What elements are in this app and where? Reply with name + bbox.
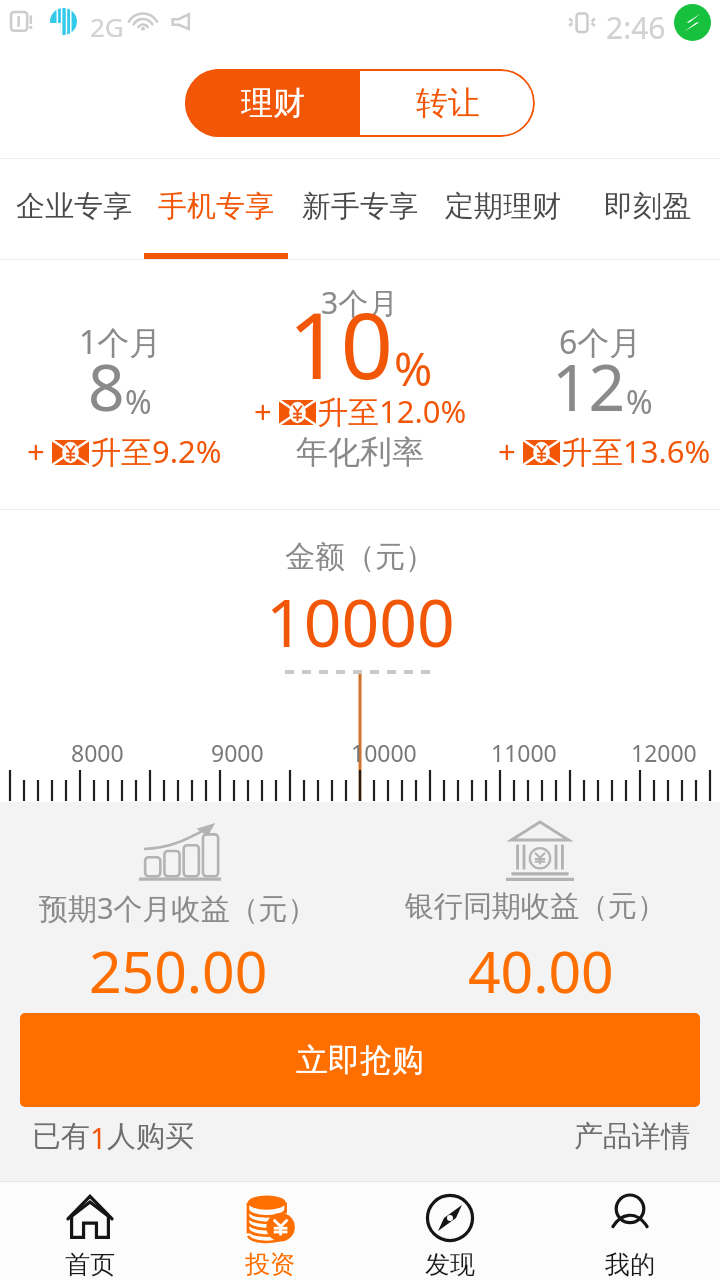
staticText: 11000 [491, 737, 557, 768]
staticText: 9000 [211, 737, 264, 768]
staticText: 6个月 [559, 320, 642, 364]
staticText: + [498, 430, 516, 472]
button[interactable]: Home [0, 1181, 180, 1280]
button[interactable]: Discover [360, 1181, 540, 1280]
button[interactable]: 企业专享 [2, 159, 146, 259]
staticText: 年化利率 [296, 432, 424, 472]
staticText: 升至12.0% [317, 390, 467, 432]
staticText: 立即抢购 [296, 1040, 424, 1080]
button[interactable]: 产品详情 [450, 1118, 690, 1155]
staticText: 预期3个月收益（元） [39, 888, 317, 928]
staticText: 8000 [71, 737, 124, 768]
staticText: 新手专享 [302, 188, 418, 225]
staticText: 10000 [351, 737, 417, 768]
staticText: 企业专享 [16, 188, 132, 225]
staticText: 人购买 [107, 1118, 194, 1155]
staticText: 2:46 [606, 7, 666, 48]
staticText: 发现 [425, 1249, 475, 1280]
staticText: 银行同期收益（元） [405, 888, 666, 925]
staticText: + [254, 390, 272, 432]
button[interactable]: 定期理财 [431, 159, 575, 259]
button[interactable]: 转让 [360, 69, 535, 137]
button[interactable]: 即刻盈 [591, 159, 703, 259]
button[interactable]: 立即抢购 [20, 1013, 700, 1107]
staticText: 转让 [416, 83, 480, 123]
button[interactable]: Profile [540, 1181, 720, 1280]
staticText: 首页 [65, 1249, 115, 1280]
staticText: 金额（元） [285, 538, 435, 576]
button[interactable]: 已有 [32, 1118, 194, 1157]
staticText: 2G [90, 9, 124, 44]
staticText: 1 [90, 1118, 107, 1157]
staticText: 12 [552, 343, 626, 430]
staticText: 升至9.2% [90, 430, 222, 472]
staticText: 250.00 [89, 932, 268, 1010]
staticText: % [394, 337, 433, 400]
staticText: 8 [88, 343, 125, 430]
staticText: 12000 [631, 737, 697, 768]
button[interactable]: 新手专享 [288, 159, 432, 259]
staticText: 升至13.6% [561, 430, 711, 472]
button[interactable]: Invest [180, 1181, 360, 1280]
staticText: 投资 [245, 1249, 295, 1280]
staticText: 40.00 [468, 932, 614, 1010]
staticText: 我的 [605, 1249, 655, 1280]
staticText: 3个月 [321, 282, 399, 323]
staticText: 已有 [32, 1118, 90, 1155]
staticText: 手机专享 [158, 188, 274, 225]
staticText: + [27, 430, 45, 472]
button[interactable]: 手机专享 [144, 159, 288, 259]
staticText: 1个月 [79, 320, 162, 364]
staticText: 即刻盈 [604, 188, 691, 225]
button[interactable]: 理财 [185, 69, 360, 137]
staticText: % [626, 380, 653, 424]
staticText: 10000 [266, 576, 455, 666]
staticText: % [125, 380, 152, 424]
staticText: 理财 [241, 83, 305, 123]
staticText: 10 [288, 281, 394, 406]
staticText: 定期理财 [445, 188, 561, 225]
staticText: 产品详情 [574, 1118, 690, 1155]
